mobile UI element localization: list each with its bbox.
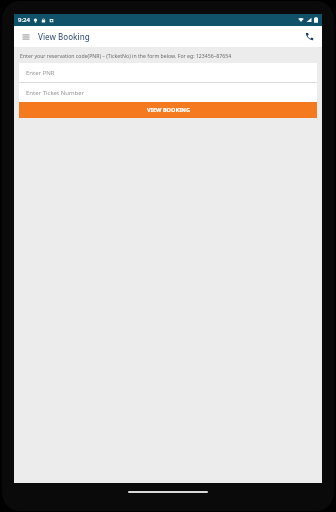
staticText: Enter your reservation code(PNR) – (Tick… <box>20 52 232 59</box>
button[interactable]: Enter PNR <box>19 63 317 82</box>
staticText: Enter Ticket Number <box>26 89 85 97</box>
staticText: VIEW BOOKING <box>147 106 190 114</box>
button[interactable]: Call support <box>296 26 322 47</box>
button[interactable]: VIEW BOOKING <box>19 102 317 118</box>
staticText: View Booking <box>38 31 90 42</box>
button[interactable]: Open navigation menu <box>14 26 38 47</box>
button[interactable]: Enter Ticket Number <box>19 83 317 102</box>
staticText: Enter PNR <box>26 69 55 77</box>
staticText: 9:24 <box>18 16 30 24</box>
